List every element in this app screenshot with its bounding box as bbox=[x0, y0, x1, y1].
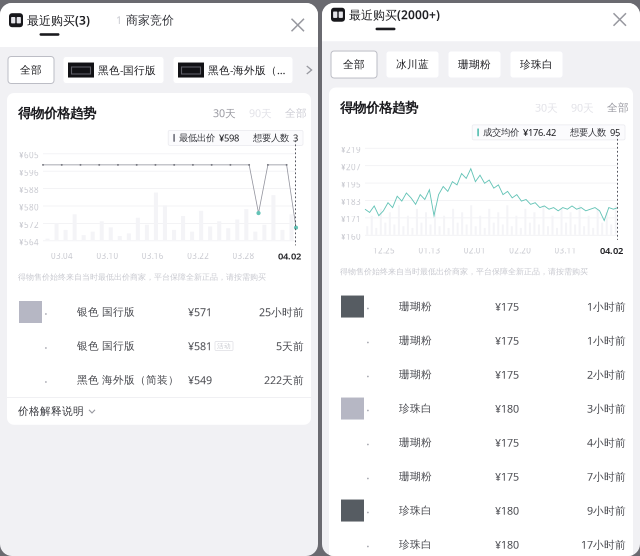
staticText: 银色 国行版 bbox=[77, 305, 135, 318]
staticText: 1小时前 bbox=[587, 333, 626, 348]
button[interactable]: 珍珠白 bbox=[510, 51, 563, 78]
button[interactable]: 珊瑚粉 bbox=[329, 323, 633, 357]
button[interactable]: 黑色-国行版 bbox=[63, 56, 164, 83]
staticText: ¥207 bbox=[341, 162, 361, 172]
staticText: ¥581 bbox=[188, 339, 212, 353]
button[interactable]: 珍珠白 bbox=[329, 391, 633, 425]
staticText: 想要人数 bbox=[570, 127, 606, 138]
staticText: ¥572 bbox=[19, 219, 39, 230]
button[interactable]: 全部 bbox=[607, 101, 629, 114]
staticText: 90天 bbox=[571, 101, 594, 115]
staticText: ¥571 bbox=[188, 305, 212, 319]
button[interactable]: 冰川蓝 bbox=[386, 51, 439, 78]
staticText: 03.16 bbox=[142, 251, 164, 261]
staticText: 黑色-国行版 bbox=[98, 63, 156, 77]
staticText: 得物售价始终来自当时最低出价商家，平台保障全新正品，请按需购买 bbox=[18, 272, 266, 282]
button[interactable]: 珍珠白 bbox=[329, 493, 633, 527]
staticText: 03.11 bbox=[555, 245, 577, 256]
staticText: ¥195 bbox=[341, 179, 361, 190]
staticText: 银色 国行版 bbox=[77, 339, 135, 352]
button[interactable]: 珊瑚粉 bbox=[329, 289, 633, 323]
button[interactable]: 全部 bbox=[285, 107, 307, 120]
staticText: 珊瑚粉 bbox=[399, 300, 432, 313]
staticText: 01.13 bbox=[418, 245, 440, 256]
button[interactable]: 珊瑚粉 bbox=[329, 459, 633, 493]
staticText: 03.04 bbox=[51, 251, 73, 261]
staticText: ¥605 bbox=[19, 150, 39, 160]
staticText: ¥564 bbox=[19, 237, 39, 247]
staticText: 珊瑚粉 bbox=[399, 368, 432, 381]
staticText: ¥175 bbox=[495, 435, 519, 450]
staticText: ¥175 bbox=[495, 367, 519, 382]
button[interactable]: 1 bbox=[110, 13, 180, 37]
staticText: 1小时前 bbox=[587, 299, 626, 314]
staticText: 得物售价始终来自当时最低出价商家，平台保障全新正品，请按需购买 bbox=[340, 267, 588, 276]
staticText: 珍珠白 bbox=[399, 402, 432, 415]
staticText: 90天 bbox=[249, 106, 272, 120]
button[interactable]: 银色 国行版 bbox=[7, 295, 311, 329]
button[interactable]: 最近购买(3) bbox=[3, 12, 96, 38]
staticText: 03.10 bbox=[96, 251, 118, 261]
staticText: 珍珠白 bbox=[520, 58, 553, 71]
staticText: ¥180 bbox=[495, 401, 519, 416]
button[interactable]: 90天 bbox=[571, 101, 594, 115]
button[interactable]: Close bbox=[284, 12, 311, 38]
button[interactable]: 最近购买(2000+) bbox=[325, 7, 446, 32]
staticText: ¥596 bbox=[19, 167, 39, 178]
staticText: 冰川蓝 bbox=[396, 58, 429, 71]
staticText: 成交均价 bbox=[483, 127, 519, 138]
button[interactable]: 黑色-海外版（… bbox=[173, 56, 293, 83]
button[interactable]: 30天 bbox=[535, 101, 558, 115]
button[interactable]: Close bbox=[606, 6, 633, 33]
staticText: ¥175 bbox=[495, 299, 519, 314]
staticText: 30天 bbox=[535, 101, 558, 115]
staticText: 最低出价 bbox=[179, 132, 215, 144]
staticText: 02.20 bbox=[509, 245, 531, 256]
staticText: ¥160 bbox=[341, 231, 361, 242]
button[interactable]: 珊瑚粉 bbox=[329, 357, 633, 391]
button[interactable]: 全部 bbox=[331, 51, 377, 78]
staticText: 全部 bbox=[20, 63, 42, 76]
staticText: 珊瑚粉 bbox=[399, 436, 432, 449]
staticText: ¥180 bbox=[495, 537, 519, 552]
staticText: 04.02 bbox=[278, 250, 301, 262]
button[interactable]: 全部 bbox=[8, 56, 54, 83]
button[interactable]: 30天 bbox=[213, 106, 236, 120]
staticText: 活动 bbox=[217, 342, 231, 350]
staticText: 03.28 bbox=[233, 251, 255, 261]
staticText: 全部 bbox=[607, 101, 629, 114]
staticText: 价格解释说明 bbox=[18, 405, 84, 418]
staticText: 珊瑚粉 bbox=[399, 470, 432, 483]
staticText: 商家竞价 bbox=[126, 13, 174, 27]
staticText: 2小时前 bbox=[587, 367, 626, 382]
staticText: 想要人数 bbox=[253, 132, 289, 144]
button[interactable]: 90天 bbox=[249, 106, 272, 120]
staticText: 黑色-海外版（… bbox=[208, 63, 285, 77]
staticText: ¥580 bbox=[19, 202, 39, 213]
staticText: ¥175 bbox=[495, 469, 519, 484]
staticText: 04.02 bbox=[600, 244, 623, 257]
button[interactable]: More filters bbox=[302, 63, 316, 77]
staticText: 得物价格趋势 bbox=[340, 99, 418, 116]
staticText: 最近购买(3) bbox=[27, 12, 90, 28]
button[interactable]: 珊瑚粉 bbox=[448, 51, 501, 78]
staticText: 7小时前 bbox=[587, 469, 626, 484]
staticText: 5天前 bbox=[276, 339, 304, 353]
button[interactable]: 价格解释说明 bbox=[7, 398, 107, 425]
button[interactable]: 珊瑚粉 bbox=[329, 425, 633, 459]
staticText: 珊瑚粉 bbox=[399, 334, 432, 347]
staticText: 3 bbox=[293, 132, 298, 144]
staticText: ¥588 bbox=[19, 185, 39, 195]
button[interactable]: 黑色 海外版（简装） bbox=[7, 363, 311, 397]
staticText: 珍珠白 bbox=[399, 538, 432, 551]
staticText: 95 bbox=[610, 126, 620, 139]
staticText: 02.01 bbox=[464, 245, 486, 256]
staticText: ¥175 bbox=[495, 333, 519, 348]
staticText: 25小时前 bbox=[259, 305, 304, 319]
staticText: ¥183 bbox=[341, 197, 361, 207]
button[interactable]: 珍珠白 bbox=[329, 527, 633, 556]
staticText: 03.22 bbox=[187, 251, 209, 261]
button[interactable]: 银色 国行版 bbox=[7, 329, 311, 363]
staticText: 得物价格趋势 bbox=[18, 105, 96, 121]
staticText: 全部 bbox=[285, 107, 307, 120]
